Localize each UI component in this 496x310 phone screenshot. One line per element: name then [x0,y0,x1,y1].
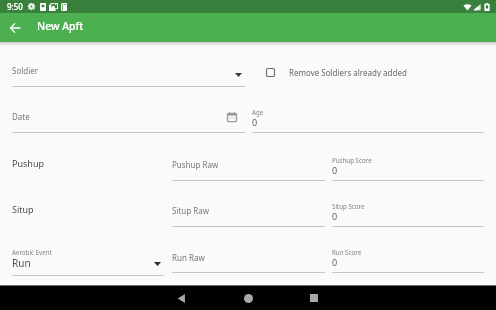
staticText: Date [12,111,30,122]
button[interactable]: Soldier [12,62,245,87]
button[interactable]: Age [252,108,484,133]
button[interactable]: Home [237,287,259,309]
staticText: Situp Score [332,202,365,210]
staticText: Pushup Score [332,156,372,164]
button[interactable]: Pushup Score [332,156,484,181]
staticText: Situp Raw [172,205,210,216]
button[interactable]: Pushup Raw [172,157,325,181]
staticText: Run Raw [172,252,205,263]
staticText: Age [252,108,264,116]
button[interactable]: Situp Score [332,202,484,227]
button[interactable]: Back [170,287,192,309]
button[interactable]: Run Score [332,248,484,273]
staticText: 0 [332,256,338,268]
button[interactable]: Recents [303,287,325,309]
button[interactable]: Date [12,109,245,133]
button[interactable]: Remove Soldiers already added [266,67,407,77]
button[interactable]: Situp Raw [172,203,325,227]
staticText: 0 [332,164,338,176]
button[interactable]: Aerobic Event [12,248,164,276]
button[interactable]: Run Raw [172,250,325,273]
staticText: 0 [332,210,338,222]
staticText: Run Score [332,248,362,256]
button[interactable]: Back [5,18,25,38]
staticText: Soldier [12,65,39,76]
staticText: Pushup [12,157,44,169]
staticText: 9:50 [7,1,23,12]
staticText: 0 [252,116,258,128]
staticText: Pushup Raw [172,159,219,170]
staticText: Run [12,256,31,270]
staticText: Remove Soldiers already added [289,67,407,77]
staticText: Aerobic Event [12,248,52,256]
staticText: New Apft [37,19,84,33]
staticText: Situp [12,203,34,215]
